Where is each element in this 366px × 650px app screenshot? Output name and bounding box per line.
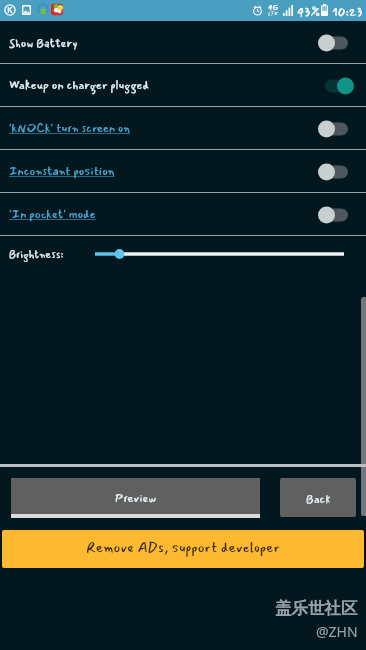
button[interactable]: Back — [280, 478, 356, 517]
button[interactable]: Toggle off — [318, 162, 354, 182]
staticText: Back — [306, 490, 331, 509]
button[interactable]: Preview — [11, 478, 260, 514]
staticText: 'In pocket' mode — [9, 205, 96, 224]
staticText: Brightness: — [9, 246, 64, 263]
button[interactable]: Toggle on — [318, 76, 354, 96]
button[interactable]: Wakeup on charger plugged — [0, 64, 366, 107]
staticText: 4G — [268, 1, 279, 14]
staticText: Show Battery — [9, 34, 78, 53]
staticText: Preview — [115, 489, 157, 508]
staticText: LTE — [268, 9, 279, 17]
button[interactable]: Show Battery — [0, 22, 366, 64]
button[interactable]: 'In pocket' mode — [0, 193, 366, 236]
staticText: 盖乐世社区 — [275, 598, 358, 619]
staticText: Wakeup on charger plugged — [9, 76, 150, 95]
button[interactable]: Remove ADs, support developer — [2, 530, 364, 568]
button[interactable]: 'kNOCk' turn screen on — [0, 107, 366, 150]
button[interactable]: Toggle off — [318, 33, 354, 53]
button[interactable]: Toggle off — [318, 205, 354, 225]
staticText: 'kNOCk' turn screen on — [9, 119, 130, 138]
staticText: Remove ADs, support developer — [86, 537, 280, 559]
staticText: Inconstant position — [9, 162, 115, 181]
button[interactable] — [95, 244, 344, 264]
staticText: 43% — [297, 2, 320, 22]
button[interactable]: Inconstant position — [0, 150, 366, 193]
staticText: 10:23 — [332, 2, 363, 22]
button[interactable]: Toggle off — [318, 119, 354, 139]
staticText: @ZHN — [316, 622, 358, 641]
